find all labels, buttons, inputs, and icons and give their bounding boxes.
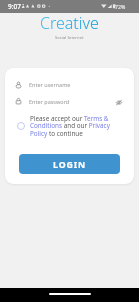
staticText: Please accept our Terms & Conditions and… bbox=[30, 114, 113, 138]
button[interactable]: Accept terms and conditions bbox=[17, 122, 25, 130]
staticText: Social Internet bbox=[55, 35, 84, 41]
button[interactable]: Enter password bbox=[16, 94, 124, 108]
staticText: 9:07 bbox=[8, 2, 21, 11]
staticText: 72% bbox=[115, 3, 126, 10]
staticText: Enter password bbox=[29, 98, 70, 105]
staticText: Enter username bbox=[29, 81, 71, 88]
staticText: LOGIN bbox=[53, 159, 87, 171]
button[interactable]: Enter username bbox=[16, 77, 124, 91]
staticText: Creative bbox=[40, 12, 99, 34]
button[interactable]: Show password bbox=[114, 98, 123, 107]
button[interactable]: LOGIN bbox=[19, 154, 120, 174]
